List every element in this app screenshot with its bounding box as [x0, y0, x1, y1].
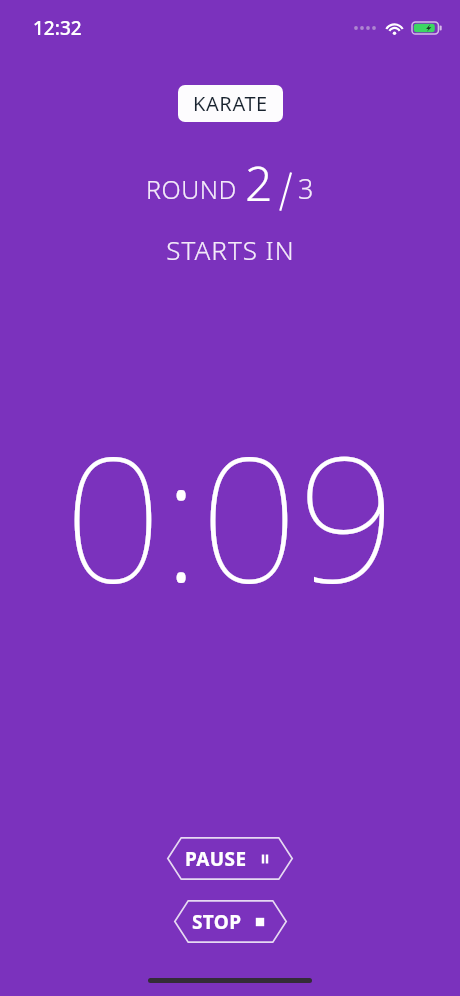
staticText: STOP	[192, 909, 242, 935]
button[interactable]: KARATE	[178, 85, 283, 122]
staticText: 3	[298, 170, 314, 207]
button[interactable]: PAUSE	[167, 837, 293, 880]
staticText: KARATE	[193, 90, 268, 117]
staticText: 2	[245, 150, 273, 215]
button[interactable]: STOP	[174, 900, 287, 943]
staticText: 12:32	[33, 15, 82, 41]
staticText: STARTS IN	[166, 232, 295, 267]
staticText: ROUND	[146, 172, 237, 206]
staticText: PAUSE	[185, 846, 247, 872]
staticText: 0:09	[64, 398, 396, 632]
